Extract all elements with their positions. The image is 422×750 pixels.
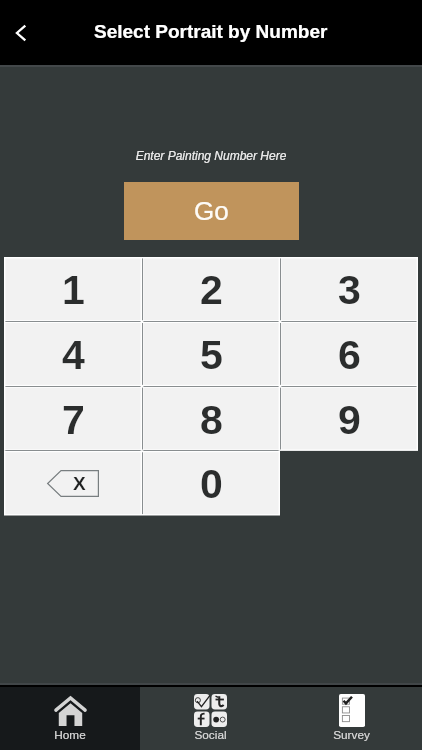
button[interactable]: Social networks [140, 687, 281, 750]
button[interactable]: Go [124, 182, 299, 240]
staticText: 0 [200, 461, 223, 507]
staticText: 8 [200, 397, 223, 443]
button[interactable]: 7 [4, 387, 142, 452]
button[interactable]: 9 [280, 387, 418, 452]
button[interactable]: Home [0, 687, 140, 750]
staticText: Select Portrait by Number [94, 21, 328, 42]
button[interactable]: 4 [4, 322, 142, 387]
button[interactable]: 6 [280, 322, 418, 387]
staticText: 9 [338, 397, 361, 443]
staticText: Go [194, 196, 229, 225]
staticText: 1 [62, 267, 85, 313]
staticText: Home [0, 728, 140, 741]
other: Backspace [47, 470, 99, 497]
staticText: X [73, 473, 86, 494]
button[interactable]: Back [0, 0, 52, 65]
other: Social networks [194, 694, 227, 727]
button[interactable]: 3 [280, 257, 418, 322]
button[interactable]: 2 [142, 257, 280, 322]
button[interactable]: Backspace [4, 452, 142, 516]
staticText: 5 [200, 332, 223, 378]
button[interactable]: 5 [142, 322, 280, 387]
staticText: 4 [62, 332, 85, 378]
staticText: 3 [338, 267, 361, 313]
staticText: 7 [62, 397, 85, 443]
button[interactable]: 1 [4, 257, 142, 322]
staticText: 6 [338, 332, 361, 378]
staticText: Survey [281, 728, 422, 741]
button[interactable]: 8 [142, 387, 280, 452]
staticText: Enter Painting Number Here [0, 149, 422, 162]
other: Survey [339, 694, 365, 727]
staticText: 2 [200, 267, 223, 313]
button[interactable]: Survey [281, 687, 422, 750]
button[interactable]: 0 [142, 452, 280, 516]
staticText: Social [140, 728, 281, 741]
